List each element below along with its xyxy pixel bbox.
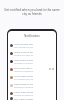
staticText: Chris Vega landed in Rome bbox=[14, 74, 33, 77]
staticText: is in Berlin for this week bbox=[14, 77, 33, 80]
button[interactable]: Chris Vega landed in Rome bbox=[8, 73, 56, 81]
staticText: Dana Blake is here today bbox=[14, 82, 33, 85]
staticText: Alex Morgan landed in Tokyo bbox=[14, 42, 33, 45]
button[interactable]: Alex Morgan landed in Tokyo bbox=[8, 41, 56, 49]
staticText: just landed in Tokyo a moment bbox=[14, 45, 33, 48]
button[interactable]: Noah Patel arrived in Oslo bbox=[8, 89, 56, 97]
staticText: Mia Lopez landed in Lima bbox=[14, 97, 33, 100]
staticText: Notifications bbox=[8, 34, 56, 38]
staticText: Sam Rivera arrived safely bbox=[14, 58, 33, 61]
button[interactable]: Jamie Chen is here now ok bbox=[8, 49, 56, 57]
staticText: is now in Paris until Friday bbox=[14, 53, 33, 56]
staticText: Get notified when you land in the same c… bbox=[2, 8, 62, 16]
button[interactable]: Sam Rivera arrived safely bbox=[8, 57, 56, 65]
staticText: Noah Patel arrived in Oslo bbox=[14, 90, 33, 93]
button[interactable]: Dana Blake is here today bbox=[8, 81, 56, 89]
button[interactable]: Mia Lopez landed in Lima bbox=[8, 97, 56, 100]
staticText: Jamie Chen is here now ok bbox=[14, 50, 33, 53]
staticText: wants to connect with you now bbox=[14, 69, 33, 72]
staticText: Priya Nair sent a request bbox=[14, 66, 33, 69]
staticText: landed in Madrid this evening bbox=[14, 85, 33, 88]
staticText: arrived in Lisbon earlier today bbox=[14, 61, 33, 64]
button[interactable]: Priya Nair sent a request bbox=[8, 65, 56, 73]
staticText: is now in Seoul for some work bbox=[14, 93, 33, 96]
